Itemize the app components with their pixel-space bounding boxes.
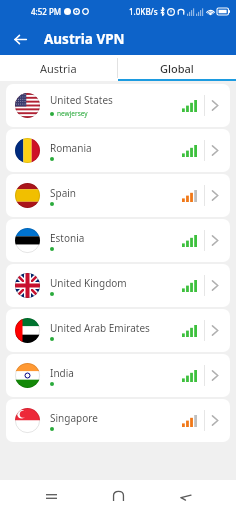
staticText: Romania xyxy=(50,141,92,155)
button[interactable]: Singapore xyxy=(6,399,230,442)
button[interactable]: United Arab Emirates xyxy=(6,309,230,352)
staticText: United States xyxy=(50,93,113,107)
button[interactable]: Back xyxy=(169,480,201,512)
button[interactable]: Home xyxy=(102,480,134,512)
button[interactable]: Spain xyxy=(6,174,230,217)
staticText: Austria VPN xyxy=(44,30,125,48)
button[interactable]: Recent apps xyxy=(35,480,67,512)
staticText: Global xyxy=(160,61,194,76)
button[interactable]: Back xyxy=(10,29,30,49)
staticText: India xyxy=(50,366,74,380)
staticText: United Kingdom xyxy=(50,276,127,290)
button[interactable]: India xyxy=(6,354,230,397)
button[interactable]: Global xyxy=(118,55,236,81)
staticText: Estonia xyxy=(50,231,85,245)
staticText: Spain xyxy=(50,186,77,200)
staticText: 4:52 PM xyxy=(31,6,62,17)
staticText: Austria xyxy=(40,61,77,76)
staticText: United Arab Emirates xyxy=(50,321,150,335)
button[interactable]: United Kingdom xyxy=(6,264,230,307)
button[interactable]: Austria xyxy=(0,55,117,81)
staticText: newjersey xyxy=(57,109,88,118)
button[interactable]: Estonia xyxy=(6,219,230,262)
button[interactable]: Romania xyxy=(6,129,230,172)
staticText: 1.0KB/s xyxy=(129,6,158,17)
button[interactable]: United States xyxy=(6,84,230,127)
staticText: Singapore xyxy=(50,411,98,425)
